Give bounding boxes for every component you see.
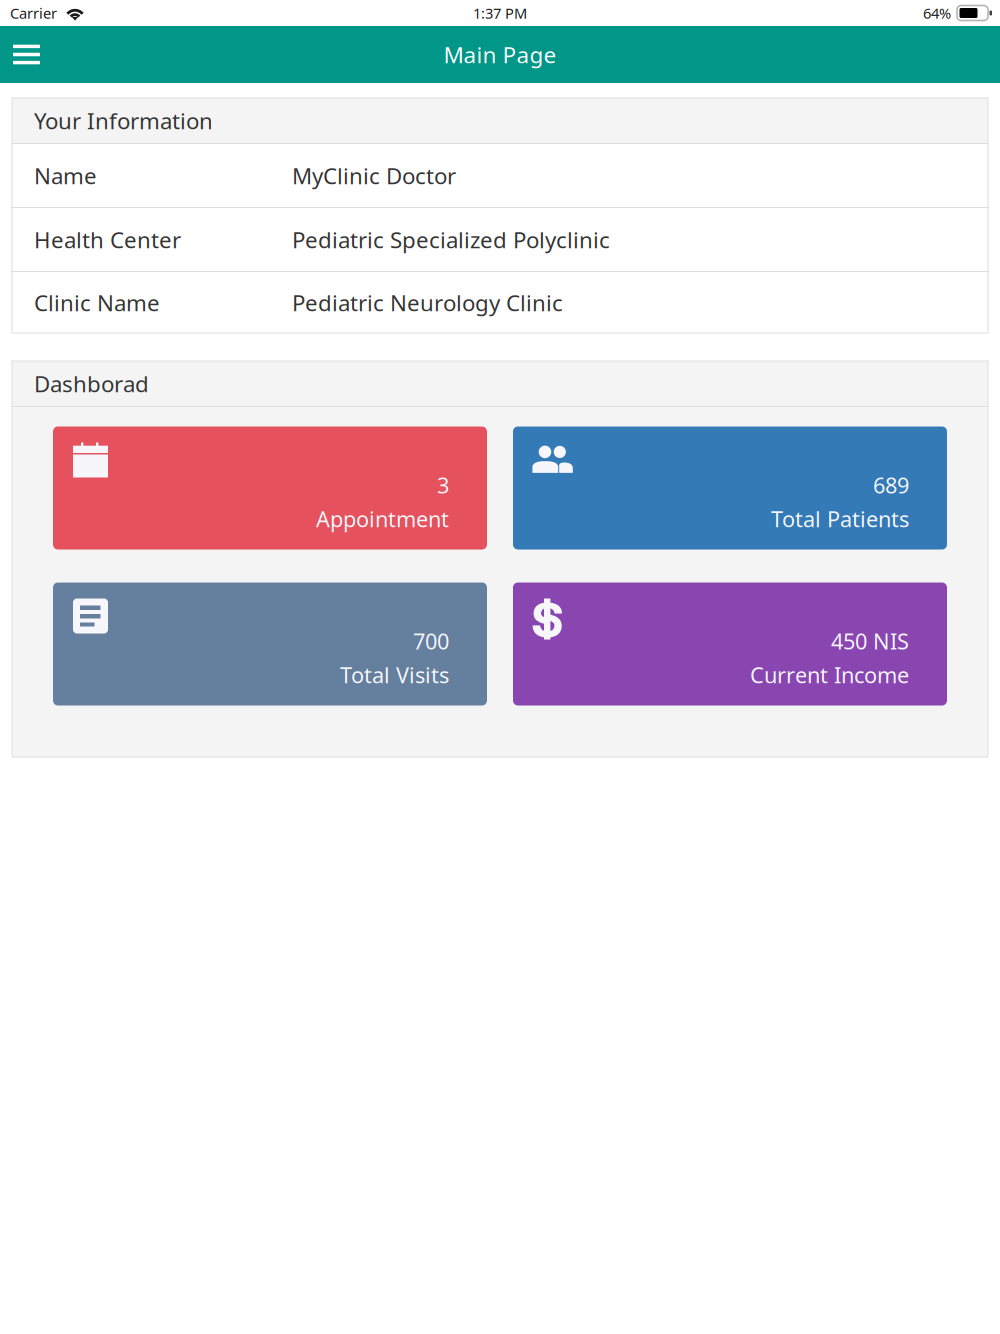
staticText: Total Patients: [771, 504, 909, 533]
staticText: 689: [873, 470, 909, 500]
staticText: Your Information: [34, 105, 213, 136]
staticText: Total Visits: [340, 660, 449, 689]
button[interactable]: 3: [53, 426, 487, 549]
button[interactable]: Name: [12, 144, 988, 207]
staticText: Carrier: [10, 3, 57, 23]
staticText: Pediatric Neurology Clinic: [292, 287, 563, 318]
button[interactable]: Health Center: [12, 208, 988, 271]
staticText: Current Income: [750, 660, 909, 689]
staticText: Name: [34, 160, 97, 191]
staticText: 1:37 PM: [473, 3, 527, 23]
staticText: Dashborad: [34, 368, 149, 399]
staticText: Clinic Name: [34, 287, 160, 318]
staticText: Appointment: [316, 504, 449, 533]
staticText: 450 NIS: [831, 626, 909, 656]
button[interactable]: 700: [53, 582, 487, 705]
button[interactable]: 689: [513, 426, 947, 549]
staticText: Main Page: [443, 39, 556, 70]
button[interactable]: Clinic Name: [12, 272, 988, 333]
button[interactable]: Menu: [0, 26, 58, 83]
staticText: MyClinic Doctor: [292, 160, 456, 191]
staticText: Pediatric Specialized Polyclinic: [292, 224, 610, 255]
button[interactable]: 450 NIS: [513, 582, 947, 705]
staticText: 64%: [923, 3, 951, 23]
staticText: 3: [437, 470, 449, 500]
staticText: Health Center: [34, 224, 181, 255]
staticText: 700: [413, 626, 449, 656]
